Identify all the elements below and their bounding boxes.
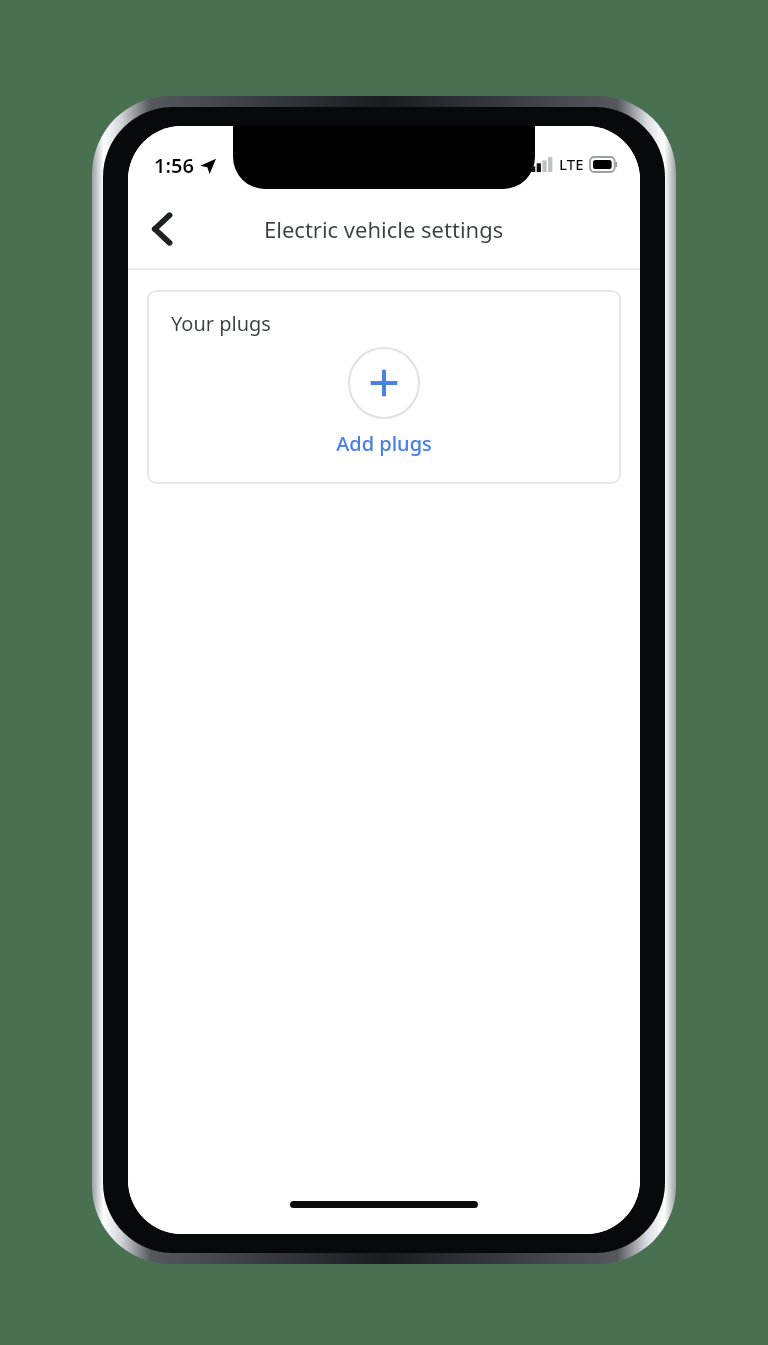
staticText: LTE bbox=[559, 154, 584, 174]
button[interactable]: Back bbox=[134, 201, 190, 257]
staticText: 1:56 bbox=[154, 152, 194, 179]
staticText: Add plugs bbox=[336, 430, 432, 457]
button[interactable]: Add plugs bbox=[336, 347, 432, 457]
staticText: Electric vehicle settings bbox=[264, 214, 504, 244]
staticText: Your plugs bbox=[171, 310, 271, 337]
